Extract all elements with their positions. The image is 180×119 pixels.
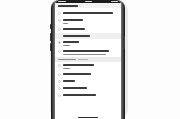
button[interactable] [55, 48, 121, 57]
other: Mute switch [50, 24, 51, 29]
other: Expand [79, 5, 81, 7]
button[interactable] [55, 26, 121, 33]
button[interactable] [55, 10, 121, 17]
button[interactable] [55, 85, 121, 92]
button[interactable] [55, 71, 121, 78]
other: Volume up [50, 33, 51, 41]
button[interactable] [55, 17, 121, 26]
button[interactable] [55, 62, 121, 71]
button[interactable]: Expand [55, 3, 121, 8]
button[interactable] [55, 92, 121, 99]
button[interactable] [55, 78, 121, 85]
other: Volume down [50, 43, 51, 51]
button[interactable] [55, 39, 121, 48]
button[interactable] [55, 33, 121, 39]
